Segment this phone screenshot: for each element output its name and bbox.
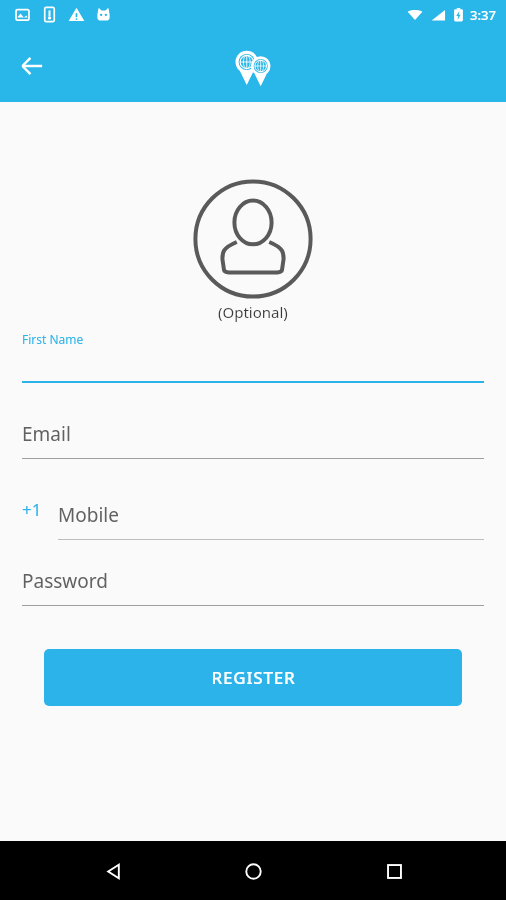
button[interactable]: Home [225, 843, 281, 899]
button[interactable]: First Name [0, 331, 506, 383]
staticText: +1 [22, 498, 42, 521]
button[interactable]: Recent apps [366, 843, 422, 899]
staticText: 3:37 [470, 6, 496, 24]
staticText: REGISTER [211, 666, 296, 689]
staticText: First Name [22, 331, 84, 347]
button[interactable]: Back [8, 42, 56, 90]
button[interactable]: +1 [0, 498, 506, 540]
staticText: (Optional) [218, 302, 288, 322]
staticText: Mobile [58, 502, 119, 528]
button[interactable]: Email [0, 421, 506, 459]
button[interactable]: REGISTER [44, 649, 462, 706]
button[interactable]: Password [0, 568, 506, 606]
button[interactable]: Back [85, 843, 141, 899]
button[interactable]: Profile photo (optional) [193, 179, 313, 299]
staticText: Password [22, 568, 108, 594]
staticText: Email [22, 421, 71, 447]
